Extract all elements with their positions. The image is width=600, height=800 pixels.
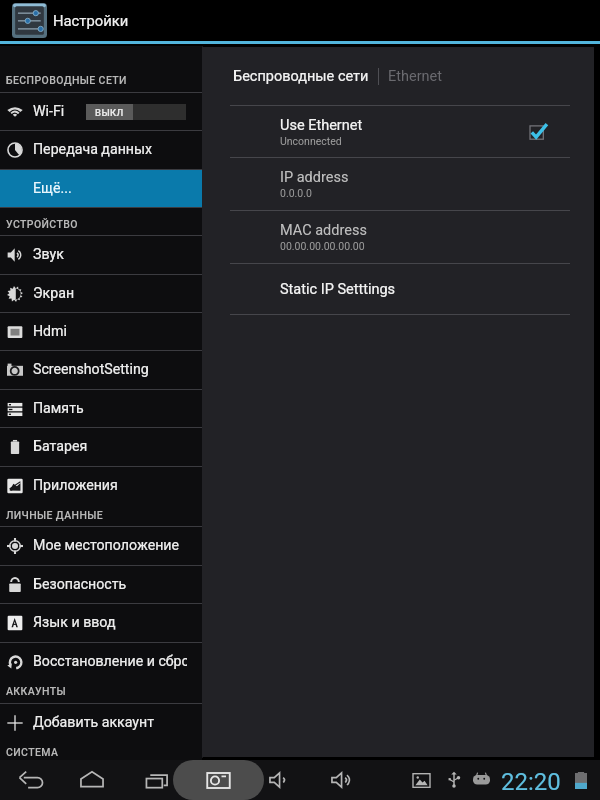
button[interactable]: Ещё...: [0, 170, 202, 207]
staticText: БЕСПРОВОДНЫЕ СЕТИ: [6, 74, 127, 86]
button[interactable]: Screenshot: [199, 760, 237, 800]
staticText: Восстановление и сброс: [33, 653, 187, 670]
staticText: 0.0.0.0: [280, 187, 312, 199]
staticText: ВЫКЛ: [95, 107, 124, 118]
button[interactable]: IP address: [202, 158, 594, 210]
button[interactable]: Память: [0, 390, 202, 427]
staticText: Hdmi: [33, 323, 68, 340]
button[interactable]: Hdmi: [0, 313, 202, 350]
button[interactable]: Настройки: [0, 0, 600, 41]
button[interactable]: Язык и ввод: [0, 604, 202, 641]
staticText: Ещё...: [33, 180, 72, 197]
button[interactable]: Screenshot: [173, 760, 264, 800]
button[interactable]: Wi-Fi: [0, 93, 202, 130]
button[interactable]: Volume down: [262, 760, 300, 800]
staticText: ScreenshotSetting: [33, 361, 149, 378]
staticText: Добавить аккаунт: [33, 714, 155, 731]
staticText: УСТРОЙСТВО: [6, 218, 78, 230]
staticText: IP address: [280, 169, 349, 186]
staticText: Безопасность: [33, 576, 127, 593]
staticText: Ethernet: [388, 68, 443, 85]
staticText: Язык и ввод: [33, 614, 116, 631]
button[interactable]: ScreenshotSetting: [0, 351, 202, 388]
staticText: 00.00.00.00.00.00: [280, 240, 365, 252]
button[interactable]: Восстановление и сброс: [0, 643, 202, 680]
button[interactable]: Use Ethernet: [528, 121, 550, 143]
button[interactable]: Батарея: [0, 428, 202, 465]
button[interactable]: Безопасность: [0, 566, 202, 603]
staticText: Батарея: [33, 438, 88, 455]
button[interactable]: Recent apps: [138, 760, 176, 800]
staticText: Передача данных: [33, 141, 153, 158]
button[interactable]: Volume up: [324, 760, 362, 800]
button[interactable]: Звук: [0, 236, 202, 273]
staticText: ЛИЧНЫЕ ДАННЫЕ: [6, 509, 104, 521]
staticText: Память: [33, 400, 84, 417]
staticText: Звук: [33, 246, 64, 263]
staticText: Настройки: [53, 12, 129, 29]
staticText: MAC address: [280, 222, 367, 239]
staticText: Use Ethernet: [280, 117, 363, 134]
staticText: Мое местоположение: [33, 537, 180, 554]
button[interactable]: MAC address: [202, 211, 594, 263]
staticText: Static IP Setttings: [280, 281, 396, 298]
button[interactable]: Static IP Setttings: [202, 264, 594, 314]
button[interactable]: Home: [73, 760, 111, 800]
staticText: 22:20: [501, 768, 561, 796]
staticText: Wi-Fi: [33, 103, 65, 120]
staticText: Приложения: [33, 477, 118, 494]
staticText: СИСТЕМА: [6, 746, 59, 758]
button[interactable]: Приложения: [0, 467, 202, 504]
staticText: Unconnected: [280, 135, 342, 147]
staticText: АККАУНТЫ: [6, 685, 67, 697]
button[interactable]: Use Ethernet: [202, 106, 594, 157]
staticText: Беспроводные сети: [233, 68, 369, 85]
button[interactable]: Добавить аккаунт: [0, 704, 202, 741]
button[interactable]: Мое местоположение: [0, 527, 202, 564]
staticText: Экран: [33, 285, 75, 302]
button[interactable]: Передача данных: [0, 131, 202, 168]
button[interactable]: Экран: [0, 275, 202, 312]
button[interactable]: Back: [12, 760, 50, 800]
